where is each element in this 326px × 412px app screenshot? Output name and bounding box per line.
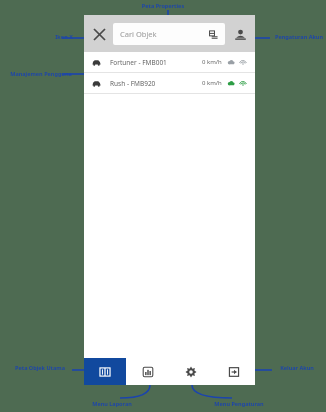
staticText: Rush - FMB920 <box>110 79 156 88</box>
staticText: Menu Pengaturan <box>208 400 270 407</box>
staticText: Peta Properties <box>130 2 196 9</box>
button[interactable]: Tutup <box>89 24 109 44</box>
staticText: Pengaturan Akun <box>272 33 326 40</box>
button[interactable]: Laporan <box>126 358 169 385</box>
button[interactable]: Pengaturan Akun <box>230 24 250 44</box>
staticText: Menu Laporan <box>84 400 140 407</box>
staticText: Peta Objek Utama <box>10 364 70 371</box>
button[interactable]: Peta <box>84 358 126 385</box>
button[interactable]: Cari Objek <box>113 23 225 45</box>
staticText: 0 km/h <box>202 58 222 66</box>
staticText: 0 km/h <box>202 79 222 87</box>
staticText: Cari Objek <box>120 29 157 39</box>
staticText: Keluar Akun <box>272 364 322 371</box>
button[interactable]: Keluar <box>212 358 255 385</box>
button[interactable]: Fortuner - FMB001 <box>84 52 255 72</box>
staticText: Fortuner - FMB001 <box>110 58 167 67</box>
button[interactable]: Pengaturan <box>169 358 212 385</box>
staticText: Ikon X <box>45 33 83 40</box>
staticText: Manajemen Pengguna <box>2 70 80 77</box>
button[interactable]: Rush - FMB920 <box>84 73 255 93</box>
